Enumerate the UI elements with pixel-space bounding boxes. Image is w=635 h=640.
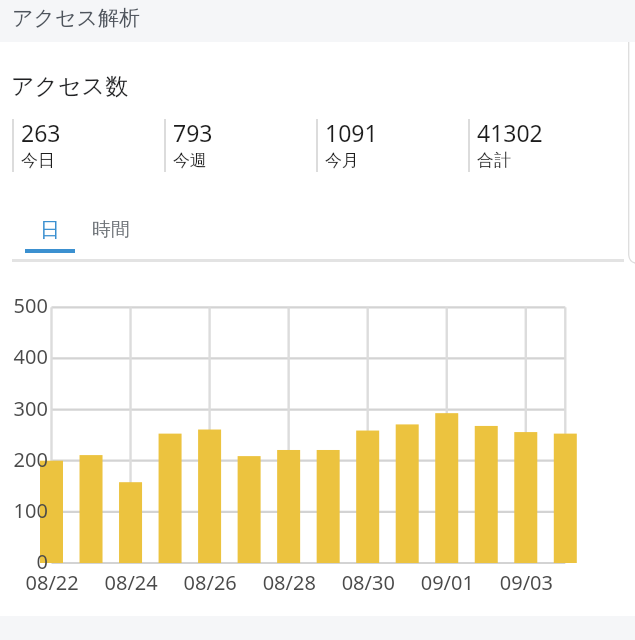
staticText: 41302 [477, 117, 543, 148]
button[interactable]: 1091 [316, 117, 468, 171]
staticText: アクセス解析 [12, 5, 140, 31]
staticText: 263 [21, 117, 61, 148]
button[interactable]: 41302 [468, 117, 620, 171]
staticText: アクセス数 [11, 72, 129, 101]
button[interactable]: 日別アクセス数の棒グラフ [0, 0, 635, 640]
staticText: 今日 [21, 150, 55, 171]
button[interactable]: アクセス解析 [0, 0, 635, 42]
staticText: 合計 [477, 150, 511, 171]
staticText: 1091 [325, 117, 378, 148]
staticText: 793 [173, 117, 213, 148]
staticText: 時間 [92, 218, 130, 242]
staticText: 今週 [173, 150, 207, 171]
button[interactable]: 時間 [86, 205, 136, 260]
button[interactable]: 日 [25, 205, 75, 260]
button[interactable]: 793 [164, 117, 316, 171]
button[interactable]: 263 [12, 117, 164, 171]
staticText: 日 [40, 218, 60, 243]
staticText: 今月 [325, 150, 359, 171]
